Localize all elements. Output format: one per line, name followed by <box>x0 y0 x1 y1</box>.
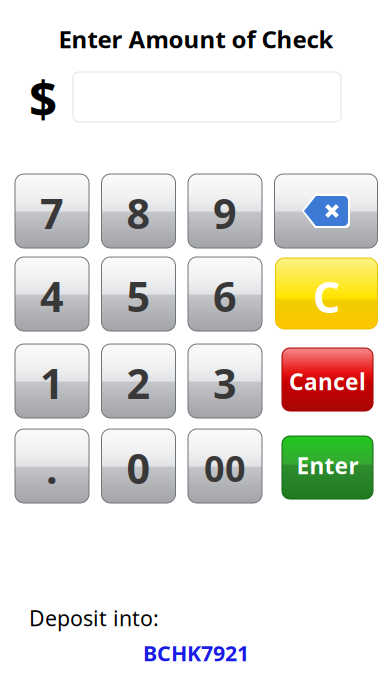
staticText: 6 <box>213 269 237 323</box>
button[interactable]: 3 <box>188 344 262 418</box>
staticText: 0 <box>126 441 150 495</box>
button[interactable]: 7 <box>15 174 89 248</box>
staticText: C <box>313 268 340 325</box>
staticText: 8 <box>126 186 150 240</box>
staticText: Deposit into: <box>29 604 159 632</box>
button[interactable]: Clear <box>275 258 377 329</box>
button[interactable]: 6 <box>188 257 262 331</box>
button[interactable]: 2 <box>101 344 175 418</box>
staticText: 1 <box>40 356 64 410</box>
button[interactable]: BCHK7921 <box>116 640 276 666</box>
button[interactable]: 5 <box>101 257 175 331</box>
staticText: 9 <box>213 186 237 240</box>
staticText: 3 <box>213 356 237 410</box>
staticText: Enter <box>296 450 358 480</box>
button[interactable]: Delete <box>274 174 377 248</box>
button[interactable]: 1 <box>15 344 89 418</box>
staticText: Cancel <box>289 366 366 396</box>
staticText: 00 <box>204 444 246 492</box>
button[interactable]: 4 <box>15 257 89 331</box>
button[interactable]: Cancel <box>282 348 373 411</box>
button[interactable]: 8 <box>101 174 175 248</box>
staticText: 7 <box>40 186 64 240</box>
staticText: Enter Amount of Check <box>58 23 333 55</box>
button[interactable]: . <box>15 429 89 503</box>
button[interactable]: 0 <box>101 429 175 503</box>
button[interactable]: 00 <box>188 429 262 503</box>
button[interactable]: Enter <box>282 436 373 499</box>
staticText: 2 <box>126 356 150 410</box>
staticText: . <box>46 441 58 495</box>
staticText: $ <box>29 65 57 131</box>
button[interactable]: 9 <box>188 174 262 248</box>
staticText: 5 <box>126 269 150 323</box>
staticText: BCHK7921 <box>143 639 249 667</box>
staticText: 4 <box>40 269 64 323</box>
